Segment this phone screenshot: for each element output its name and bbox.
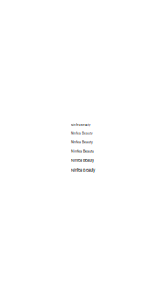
staticText: Ninfea Beauty	[71, 132, 93, 135]
staticText: Ninfea Beauty	[71, 140, 93, 144]
staticText: Ninfea Beauty	[71, 149, 94, 153]
staticText: Ninfea Beauty	[71, 168, 95, 173]
staticText: Ninfea Beauty	[71, 123, 90, 127]
staticText: Ninfea Beauty	[71, 158, 94, 163]
